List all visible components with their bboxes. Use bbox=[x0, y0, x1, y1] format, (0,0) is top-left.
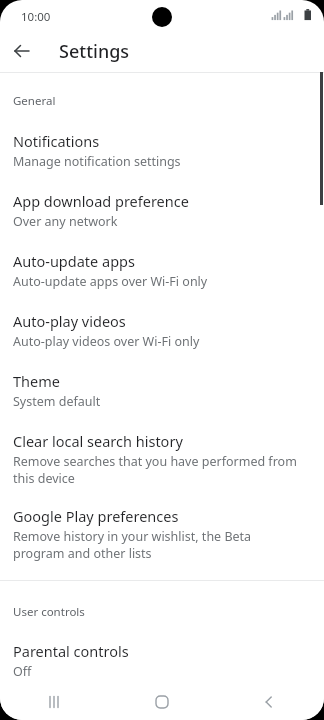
staticText: Over any network bbox=[13, 213, 118, 230]
staticText: Theme bbox=[13, 371, 60, 391]
staticText: Off bbox=[13, 663, 32, 680]
button[interactable]: Back bbox=[6, 35, 38, 67]
staticText: Settings bbox=[59, 39, 130, 64]
button[interactable]: Clear local search history bbox=[0, 431, 324, 493]
button[interactable]: Theme bbox=[0, 371, 324, 417]
staticText: Notifications bbox=[13, 131, 100, 151]
staticText: System default bbox=[13, 393, 101, 410]
button[interactable]: Back bbox=[216, 684, 324, 720]
staticText: Parental controls bbox=[13, 641, 129, 661]
button[interactable]: Notifications bbox=[0, 131, 324, 177]
button[interactable]: App download preference bbox=[0, 191, 324, 237]
staticText: User controls bbox=[13, 604, 85, 620]
staticText: Auto-update apps over Wi-Fi only bbox=[13, 273, 208, 290]
button[interactable]: Parental controls bbox=[0, 641, 324, 687]
staticText: Auto-update apps bbox=[13, 251, 135, 271]
staticText: Auto-play videos bbox=[13, 311, 126, 331]
staticText: Auto-play videos over Wi-Fi only bbox=[13, 333, 200, 350]
button[interactable]: Auto-update apps bbox=[0, 251, 324, 297]
staticText: Google Play preferences bbox=[13, 506, 179, 526]
staticText: App download preference bbox=[13, 191, 189, 211]
button[interactable]: Home bbox=[108, 684, 216, 720]
button[interactable]: Auto-play videos bbox=[0, 311, 324, 357]
staticText: General bbox=[13, 93, 56, 109]
staticText: Remove history in your wishlist, the Bet… bbox=[13, 528, 304, 561]
button[interactable]: Google Play preferences bbox=[0, 506, 324, 568]
staticText: 10:00 bbox=[21, 9, 51, 25]
button[interactable]: Recents bbox=[0, 684, 108, 720]
staticText: Remove searches that you have performed … bbox=[13, 453, 304, 486]
staticText: Clear local search history bbox=[13, 431, 183, 451]
staticText: Manage notification settings bbox=[13, 153, 181, 170]
